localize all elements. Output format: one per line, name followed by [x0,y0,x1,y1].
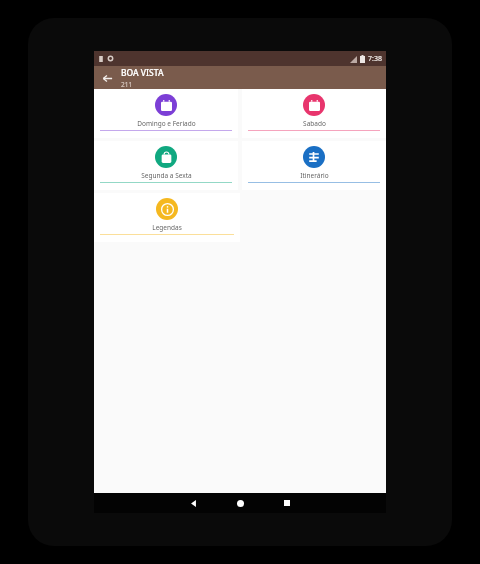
button[interactable]: Back [181,493,205,513]
staticText: Itinerário [300,171,329,180]
button[interactable]: Back [97,68,117,88]
button[interactable]: Legendas [94,193,240,242]
staticText: 211 [121,80,133,89]
staticText: Segunda a Sexta [141,171,192,180]
staticText: Domingo e Feriado [137,119,196,128]
button[interactable]: Recent apps [275,493,299,513]
staticText: Sabado [303,119,326,128]
staticText: 7:38 [368,54,382,64]
staticText: BOA VISTA [121,67,164,79]
staticText: Legendas [152,223,182,232]
button[interactable]: Segunda a Sexta [94,141,238,190]
button[interactable]: Home [228,493,252,513]
button[interactable]: Domingo e Feriado [94,89,238,138]
button[interactable]: Itinerário [242,141,386,190]
button[interactable]: Sabado [242,89,386,138]
